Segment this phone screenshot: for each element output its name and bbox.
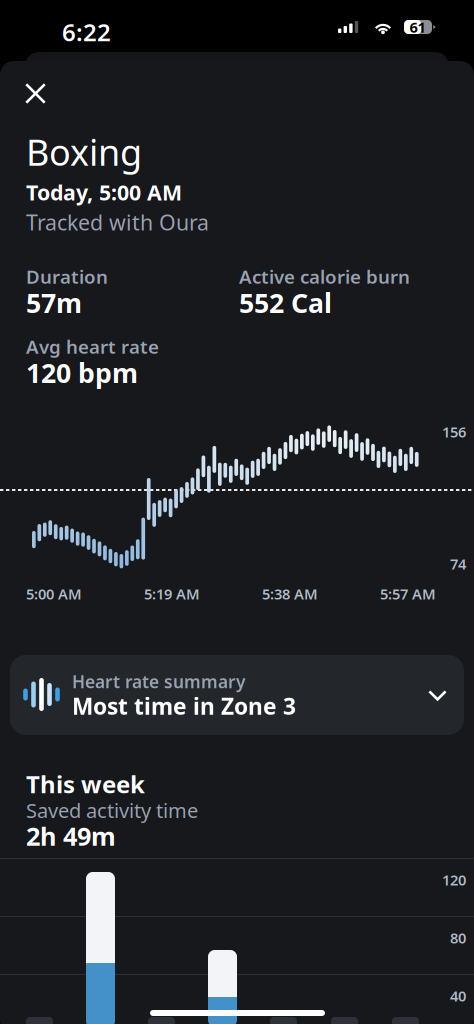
staticText: Saved activity time (26, 797, 198, 824)
staticText: 552 Cal (239, 285, 332, 320)
staticText: Boxing (26, 128, 142, 176)
staticText: Most time in Zone 3 (72, 691, 296, 721)
staticText: 57m (26, 285, 82, 320)
staticText: This week (26, 768, 145, 800)
staticText: 5:19 AM (144, 584, 200, 603)
staticText: 156 (442, 422, 466, 441)
staticText: 120 bpm (26, 355, 138, 390)
staticText: Tracked with Oura (26, 208, 209, 236)
staticText: 120 (442, 870, 466, 889)
staticText: Duration (26, 264, 108, 289)
staticText: Heart rate summary (72, 670, 245, 693)
staticText: 80 (450, 928, 466, 947)
staticText: 2h 49m (26, 819, 116, 853)
button[interactable]: Heart rate summary (10, 655, 464, 735)
staticText: 5:38 AM (262, 584, 318, 603)
staticText: 5:00 AM (26, 584, 82, 603)
staticText: 40 (450, 986, 466, 1005)
staticText: 6:22 (62, 16, 111, 48)
staticText: Active calorie burn (239, 264, 410, 289)
staticText: Avg heart rate (26, 334, 159, 359)
staticText: 61 (409, 17, 425, 37)
staticText: 5:57 AM (380, 584, 436, 603)
staticText: 74 (450, 554, 466, 573)
button[interactable]: Close (14, 72, 57, 115)
staticText: Today, 5:00 AM (26, 178, 182, 206)
